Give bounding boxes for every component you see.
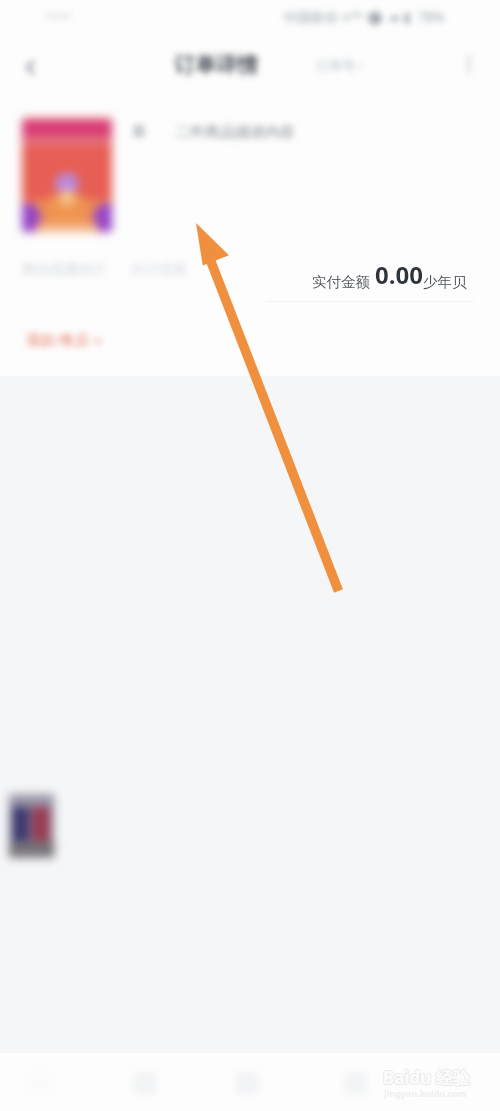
staticText: 二件商品描述内容 <box>175 123 295 142</box>
button[interactable]: Back <box>10 47 50 87</box>
staticText: 商品优惠合计 <box>22 261 106 279</box>
staticText: Baidu 经验 <box>383 1065 470 1088</box>
staticText: 第 <box>132 123 146 141</box>
button[interactable]: Category <box>116 1055 172 1111</box>
staticText: Baidu 经验 <box>383 1066 470 1089</box>
staticText: Baidu 经验 <box>383 1067 470 1090</box>
staticText: Baidu 经验 <box>384 1066 471 1089</box>
staticText: 订单号 › <box>316 56 363 74</box>
button[interactable]: Cart <box>219 1055 275 1111</box>
button[interactable]: Order number <box>316 50 363 80</box>
button[interactable]: More options <box>456 51 482 77</box>
staticText: Baidu 经验 <box>382 1066 469 1089</box>
staticText: 实付金额 <box>312 273 370 291</box>
staticText: 中国移动 ᯤ⁴ᴳ ⬤ ▰ ▮ 78% <box>283 8 445 26</box>
staticText: 订单详情 <box>174 52 258 78</box>
button[interactable]: 退款/售后 ›› <box>26 329 103 349</box>
staticText: 共计优惠 <box>130 261 186 279</box>
staticText: jingyan.baidu.com <box>384 1087 467 1099</box>
staticText: 0.00 <box>375 258 423 291</box>
staticText: 少年贝 <box>423 273 467 291</box>
staticText: 退款/售后 ›› <box>26 329 103 349</box>
